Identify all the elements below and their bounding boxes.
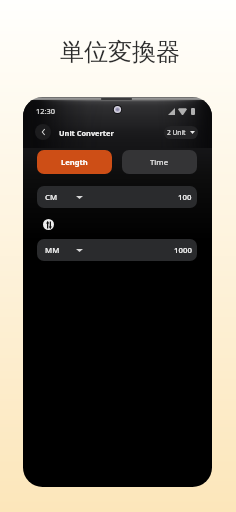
button[interactable]: Swap units	[43, 219, 54, 230]
button[interactable]: Back	[35, 124, 51, 140]
staticText: CM	[45, 192, 58, 203]
button[interactable]: CM	[37, 186, 197, 208]
button[interactable]: 2 Unit	[164, 126, 198, 139]
staticText: 2 Unit	[167, 128, 186, 137]
button[interactable]: MM	[37, 239, 197, 261]
staticText: 単位変換器	[2, 37, 236, 67]
staticText: Time	[150, 157, 169, 168]
staticText: 1000	[174, 245, 192, 256]
button[interactable]: Time	[122, 150, 197, 174]
button[interactable]: Length	[37, 150, 112, 174]
staticText: 100	[178, 192, 192, 203]
staticText: Length	[61, 157, 88, 167]
staticText: 12:30	[36, 106, 55, 116]
staticText: Unit Converter	[59, 128, 114, 138]
staticText: MM	[45, 245, 60, 256]
